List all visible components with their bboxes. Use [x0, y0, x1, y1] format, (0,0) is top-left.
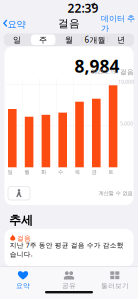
- staticText: 추세: [9, 213, 33, 228]
- staticText: 데이터 추가: [101, 14, 135, 33]
- staticText: 월: [65, 35, 73, 45]
- staticText: 년: [117, 35, 125, 45]
- staticText: 8,984: [74, 54, 119, 77]
- staticText: 일: [13, 35, 21, 45]
- staticText: 계산할 수 없음: [98, 190, 132, 197]
- staticText: 6개월: [84, 34, 105, 45]
- button[interactable]: 월: [56, 33, 82, 46]
- staticText: 걸음: [58, 17, 80, 30]
- staticText: 일: [7, 169, 12, 175]
- staticText: 걸음: [17, 234, 31, 242]
- button[interactable]: 주: [30, 33, 56, 46]
- staticText: 10,000: [118, 78, 134, 85]
- staticText: 수: [58, 169, 63, 175]
- staticText: 5,000: [120, 120, 133, 127]
- button[interactable]: 보행 속도: [8, 186, 30, 200]
- staticText: 2025. 2. 19.: [91, 68, 117, 75]
- staticText: 월: [24, 169, 29, 175]
- button[interactable]: 6개월: [82, 33, 108, 46]
- staticText: 요약: [16, 282, 30, 290]
- staticText: 목: [75, 169, 80, 175]
- button[interactable]: 요약: [0, 14, 22, 32]
- button[interactable]: 둘러보기: [92, 268, 138, 292]
- staticText: 공유: [62, 282, 76, 290]
- button[interactable]: 공유: [46, 268, 92, 292]
- staticText: 금: [91, 169, 96, 175]
- staticText: 걸음: [120, 68, 134, 76]
- staticText: 22:39: [67, 0, 98, 16]
- staticText: 주: [39, 35, 47, 45]
- button[interactable]: 년: [108, 33, 134, 46]
- staticText: 화: [41, 169, 46, 175]
- staticText: 지난 7주 동안 평균 걸음 수가 감소했습니다.: [10, 241, 124, 258]
- button[interactable]: 일: [4, 33, 30, 46]
- staticText: 둘러보기: [101, 282, 129, 290]
- staticText: 요약: [8, 19, 26, 30]
- button[interactable]: 요약: [0, 268, 46, 292]
- staticText: 토: [108, 169, 113, 175]
- button[interactable]: 데이터 추가: [101, 14, 135, 32]
